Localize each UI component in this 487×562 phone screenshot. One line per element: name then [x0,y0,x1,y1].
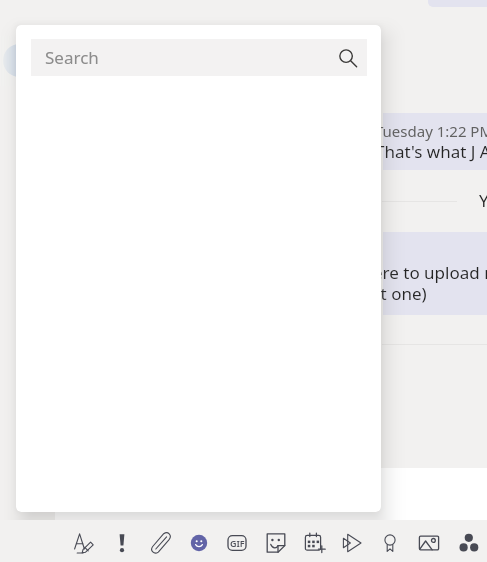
button[interactable]: Attach [143,526,177,560]
button[interactable]: Praise [373,526,407,560]
button[interactable]: Schedule [298,526,332,560]
button[interactable]: GIF [220,526,254,560]
staticText: Y [479,189,487,212]
button[interactable]: Search [31,39,367,76]
button[interactable]: Sticker [259,526,293,560]
staticText: ere to upload r [373,261,487,284]
staticText: That's what J A [375,140,487,163]
button[interactable]: Emoji [182,526,216,560]
button[interactable]: Format [67,526,101,560]
other: Search [336,47,360,71]
staticText: Tuesday 1:22 PM [375,121,487,141]
staticText: et one) [371,282,427,305]
staticText: Search [45,46,99,69]
button[interactable]: Image [412,526,446,560]
button[interactable]: More [451,526,485,560]
button[interactable]: Important [105,526,139,560]
button[interactable]: Send [335,526,369,560]
staticText: GIF [230,537,245,549]
